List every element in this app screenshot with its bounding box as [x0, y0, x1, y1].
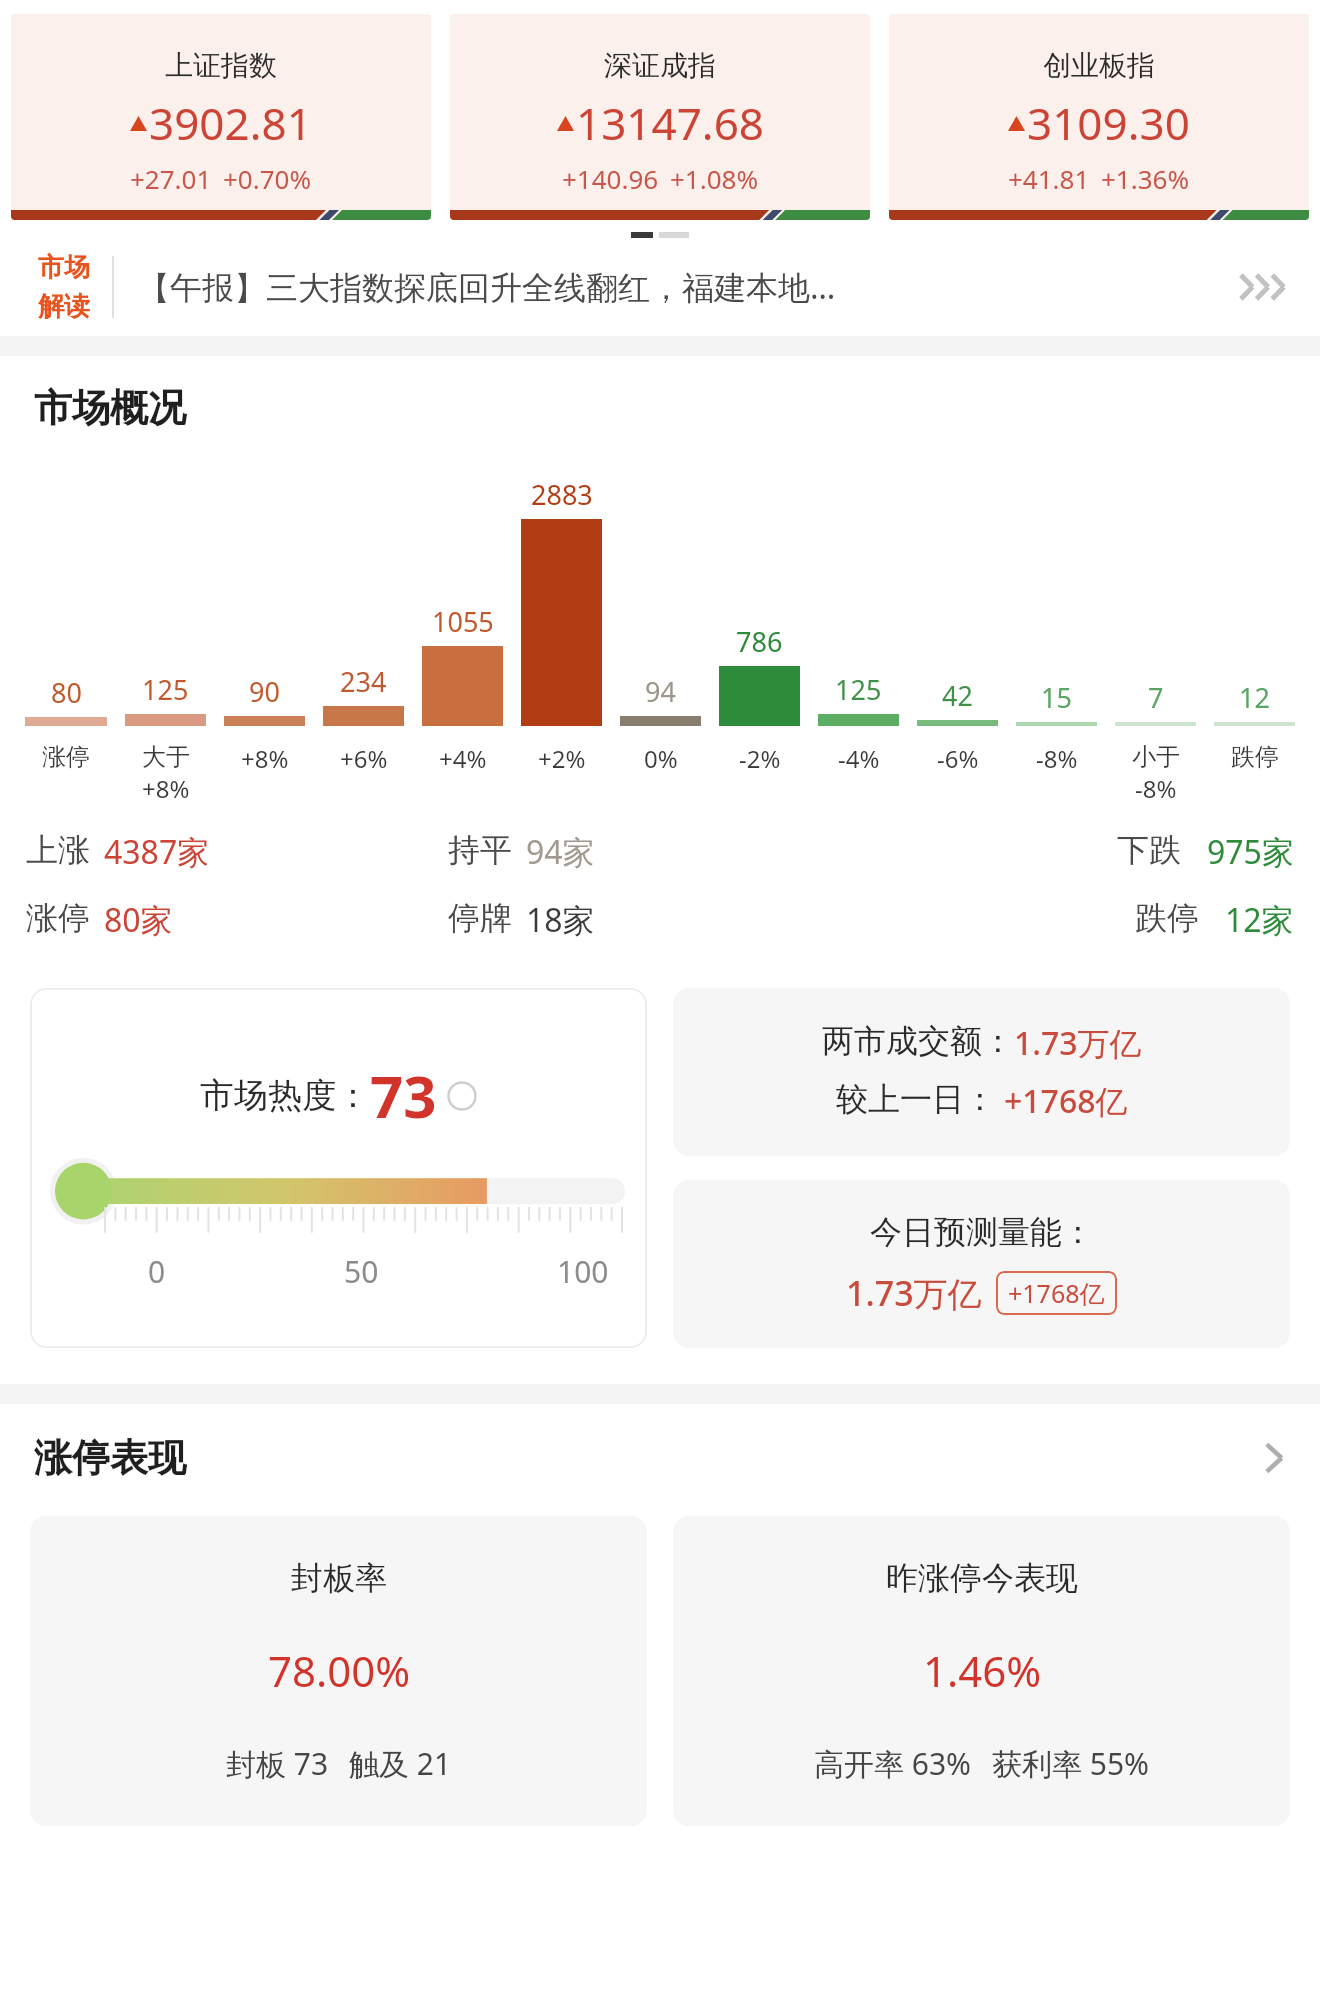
staticText: +1.36% [1101, 161, 1190, 196]
staticText: 3902.81 [149, 93, 312, 153]
button[interactable]: 创业板指 [889, 14, 1309, 220]
staticText: +1768亿 [1004, 1079, 1128, 1123]
staticText: 12 [1239, 679, 1270, 716]
staticText: 0 [148, 1251, 166, 1292]
staticText: 触及 21 [349, 1743, 452, 1784]
staticText: 15 [1041, 679, 1072, 716]
staticText: 7 [1148, 679, 1164, 716]
staticText: 小于 [1132, 742, 1180, 772]
staticText: 较上一日： [836, 1079, 996, 1119]
staticText: 市场 [38, 251, 90, 284]
button[interactable]: 今日预测量能： [673, 1180, 1290, 1348]
staticText: 封板 73 [226, 1743, 329, 1784]
staticText: 100 [557, 1251, 609, 1292]
other: 查看更多 [1262, 1438, 1286, 1478]
staticText: +1768亿 [1008, 1276, 1105, 1310]
staticText: 上涨 [26, 830, 90, 870]
staticText: 涨停表现 [34, 1434, 186, 1482]
button[interactable]: 涨停表现 [0, 1428, 1320, 1488]
staticText: 创业板指 [1043, 48, 1155, 83]
button[interactable]: 两市成交额： [673, 988, 1290, 1156]
staticText: 停牌 [448, 898, 512, 938]
staticText: 高开率 63% [814, 1743, 972, 1784]
staticText: 跌停 [1231, 742, 1279, 772]
staticText: 解读 [38, 290, 90, 323]
staticText: -4% [838, 742, 880, 775]
staticText: 涨停 [26, 898, 90, 938]
staticText: +41.81 [1008, 161, 1090, 196]
staticText: 获利率 55% [992, 1743, 1150, 1784]
button[interactable]: 上证指数 [11, 14, 431, 220]
staticText: 786 [736, 623, 783, 660]
staticText: +2% [538, 742, 586, 775]
staticText: 封板率 [291, 1558, 387, 1598]
staticText: 【午报】三大指数探底回升全线翻红，福建本地… [138, 265, 1238, 309]
staticText: 78.00% [268, 1642, 411, 1699]
staticText: 80 [51, 674, 82, 711]
staticText: 1055 [432, 603, 494, 640]
staticText: +4% [439, 742, 487, 775]
staticText: 市场概况 [34, 384, 186, 432]
staticText: 0% [644, 742, 678, 775]
staticText: 下跌 [1117, 830, 1181, 870]
staticText: 1.46% [923, 1642, 1042, 1699]
staticText: 94家 [526, 830, 595, 874]
staticText: 18家 [526, 898, 595, 942]
staticText: 1.73万亿 [1014, 1021, 1142, 1065]
staticText: +0.70% [223, 161, 312, 196]
button[interactable]: 市场 [0, 238, 1320, 336]
staticText: 昨涨停今表现 [886, 1558, 1078, 1598]
staticText: 今日预测量能： [870, 1212, 1094, 1252]
staticText: +8% [142, 772, 190, 805]
other: 说明 [447, 1081, 477, 1111]
staticText: 975家 [1207, 830, 1294, 874]
staticText: 3109.30 [1027, 93, 1190, 153]
staticText: 涨停 [42, 742, 90, 772]
staticText: 持平 [448, 830, 512, 870]
staticText: 234 [340, 663, 387, 700]
staticText: -8% [1036, 742, 1078, 775]
staticText: 跌停 [1135, 898, 1199, 938]
staticText: +6% [340, 742, 388, 775]
button[interactable]: 市场热度： [30, 988, 647, 1348]
staticText: 94 [645, 673, 676, 710]
button[interactable]: 深证成指 [450, 14, 870, 220]
staticText: -2% [739, 742, 781, 775]
staticText: 125 [835, 671, 882, 708]
staticText: 1.73万亿 [846, 1270, 982, 1316]
staticText: +1.08% [670, 161, 759, 196]
staticText: 两市成交额： [822, 1021, 1014, 1061]
staticText: +27.01 [130, 161, 212, 196]
staticText: +140.96 [562, 161, 659, 196]
staticText: 2883 [531, 476, 593, 513]
staticText: 13147.68 [576, 93, 764, 153]
staticText: 市场热度： [200, 1074, 370, 1117]
staticText: +8% [241, 742, 289, 775]
staticText: 4387家 [104, 830, 210, 874]
staticText: -6% [937, 742, 979, 775]
staticText: 12家 [1225, 898, 1294, 942]
button[interactable]: 昨涨停今表现 [673, 1516, 1290, 1826]
staticText: 深证成指 [604, 48, 716, 83]
staticText: 42 [942, 677, 973, 714]
staticText: -8% [1135, 772, 1177, 805]
staticText: 50 [344, 1251, 379, 1292]
staticText: 73 [370, 1056, 437, 1135]
other: 更多 [1238, 267, 1296, 307]
staticText: 90 [249, 673, 280, 710]
button[interactable]: 封板率 [30, 1516, 647, 1826]
staticText: 上证指数 [165, 48, 277, 83]
staticText: 125 [142, 671, 189, 708]
staticText: 大于 [142, 742, 190, 772]
staticText: 80家 [104, 898, 173, 942]
